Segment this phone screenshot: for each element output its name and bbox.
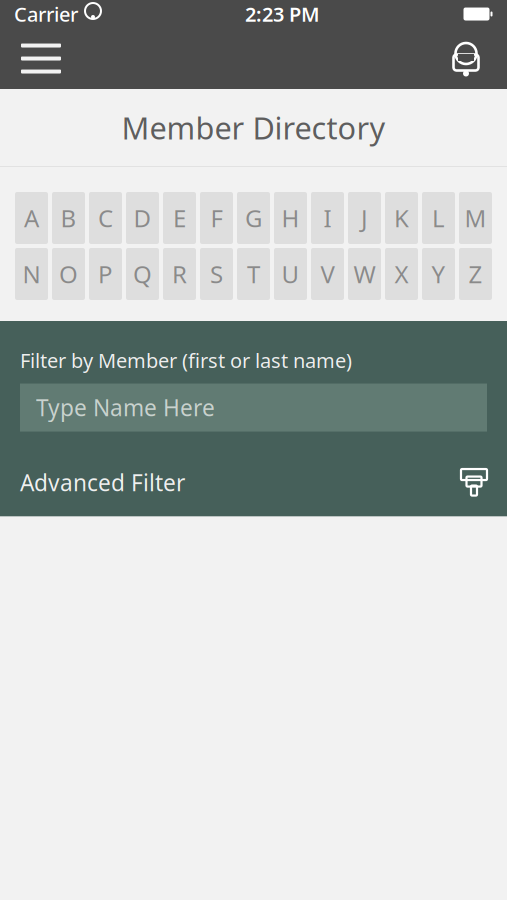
button[interactable]: O: [52, 248, 85, 300]
button[interactable]: I: [311, 192, 344, 244]
staticText: W: [353, 258, 375, 290]
button[interactable]: Q: [126, 248, 159, 300]
button[interactable]: Y: [422, 248, 455, 300]
button[interactable]: K: [385, 192, 418, 244]
staticText: K: [394, 202, 409, 234]
staticText: T: [247, 258, 260, 290]
button[interactable]: G: [237, 192, 270, 244]
staticText: U: [281, 258, 299, 290]
staticText: R: [172, 258, 187, 290]
button[interactable]: H: [274, 192, 307, 244]
staticText: E: [173, 202, 186, 234]
staticText: M: [464, 202, 486, 234]
button[interactable]: L: [422, 192, 455, 244]
staticText: Q: [133, 258, 152, 290]
staticText: S: [210, 258, 223, 290]
staticText: H: [281, 202, 299, 234]
button[interactable]: R: [163, 248, 196, 300]
staticText: Type Name Here: [36, 392, 215, 423]
button[interactable]: C: [89, 192, 122, 244]
button[interactable]: Menu: [12, 28, 70, 89]
button[interactable]: D: [126, 192, 159, 244]
staticText: D: [133, 202, 151, 234]
staticText: 2:23 PM: [245, 1, 320, 27]
staticText: V: [320, 258, 334, 290]
staticText: Y: [431, 258, 445, 290]
button[interactable]: P: [89, 248, 122, 300]
staticText: Z: [468, 258, 482, 290]
staticText: Member Directory: [121, 107, 385, 148]
staticText: F: [210, 202, 222, 234]
button[interactable]: W: [348, 248, 381, 300]
button[interactable]: V: [311, 248, 344, 300]
staticText: Advanced Filter: [20, 467, 185, 498]
button[interactable]: X: [385, 248, 418, 300]
staticText: J: [361, 202, 368, 234]
button[interactable]: T: [237, 248, 270, 300]
button[interactable]: J: [348, 192, 381, 244]
button[interactable]: Notifications: [437, 28, 495, 89]
staticText: I: [323, 202, 331, 234]
button[interactable]: B: [52, 192, 85, 244]
button[interactable]: F: [200, 192, 233, 244]
staticText: O: [59, 258, 78, 290]
staticText: X: [394, 258, 408, 290]
button[interactable]: N: [15, 248, 48, 300]
staticText: Filter by Member (first or last name): [20, 347, 352, 374]
staticText: Carrier: [14, 1, 78, 27]
staticText: A: [24, 202, 39, 234]
button[interactable]: M: [459, 192, 492, 244]
staticText: P: [98, 258, 113, 290]
staticText: G: [245, 202, 262, 234]
staticText: N: [22, 258, 40, 290]
button[interactable]: A: [15, 192, 48, 244]
button[interactable]: Advanced Filter: [0, 449, 507, 517]
button[interactable]: S: [200, 248, 233, 300]
button[interactable]: Z: [459, 248, 492, 300]
staticText: B: [60, 202, 76, 234]
button[interactable]: E: [163, 192, 196, 244]
button[interactable]: U: [274, 248, 307, 300]
staticText: C: [98, 202, 113, 234]
staticText: L: [432, 202, 445, 234]
